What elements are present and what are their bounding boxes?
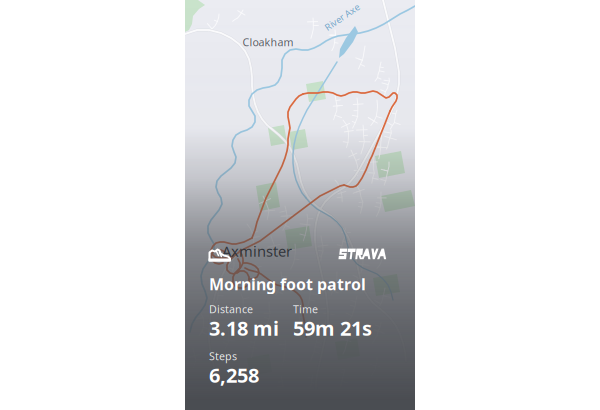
staticText: 3.18 mi — [209, 315, 279, 341]
staticText: Distance — [209, 302, 253, 316]
staticText: 59m 21s — [293, 315, 372, 341]
staticText: Time — [293, 302, 318, 316]
staticText: River Axe — [322, 11, 362, 23]
staticText: Cloakham — [242, 35, 293, 49]
staticText: Morning foot patrol — [209, 273, 366, 295]
staticText: Axminster — [222, 241, 292, 261]
staticText: Steps — [209, 349, 237, 363]
staticText: 6,258 — [209, 362, 259, 388]
